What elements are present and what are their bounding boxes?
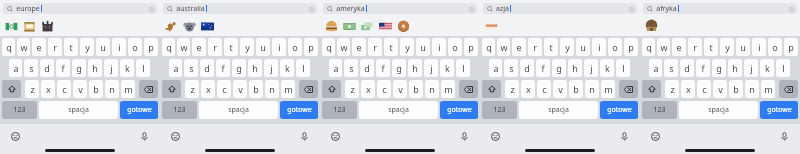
button[interactable]: v <box>713 80 727 98</box>
button[interactable]: a <box>9 59 22 77</box>
button[interactable]: b <box>409 80 423 98</box>
button[interactable]: x <box>41 80 55 98</box>
button[interactable]: k <box>120 59 134 77</box>
button[interactable]: h <box>248 59 262 77</box>
button[interactable]: Backspace <box>299 80 318 98</box>
button[interactable]: Dictation <box>297 129 311 143</box>
button[interactable]: Emoji <box>358 17 376 35</box>
button[interactable]: g <box>232 59 246 77</box>
button[interactable]: l <box>136 59 150 77</box>
button[interactable]: r <box>688 38 702 56</box>
button[interactable]: h <box>408 59 422 77</box>
button[interactable]: j <box>264 59 278 77</box>
button[interactable]: Emoji keyboard <box>168 129 182 143</box>
button[interactable]: c <box>697 80 711 98</box>
button[interactable]: c <box>537 80 551 98</box>
button[interactable]: u <box>416 38 430 56</box>
button[interactable]: s <box>24 59 38 77</box>
button[interactable]: 123 <box>482 101 517 119</box>
button[interactable]: q <box>642 38 655 56</box>
button[interactable]: spacja <box>39 101 118 119</box>
button[interactable]: o <box>448 38 462 56</box>
button[interactable]: p <box>144 38 158 56</box>
button[interactable]: spacja <box>679 101 758 119</box>
button[interactable]: z <box>25 80 39 98</box>
button[interactable]: Emoji <box>642 17 660 35</box>
button[interactable]: l <box>776 59 790 77</box>
button[interactable]: 123 <box>642 101 677 119</box>
button[interactable]: t <box>544 38 558 56</box>
button[interactable]: r <box>528 38 542 56</box>
button[interactable]: w <box>657 38 670 56</box>
button[interactable]: Emoji <box>394 17 412 35</box>
button[interactable]: gotowe <box>760 101 798 119</box>
button[interactable]: Dictation <box>777 129 791 143</box>
button[interactable]: n <box>265 80 279 98</box>
button[interactable]: a <box>169 59 182 77</box>
button[interactable]: Emoji <box>340 17 358 35</box>
button[interactable]: Backspace <box>139 80 158 98</box>
button[interactable]: o <box>128 38 142 56</box>
button[interactable]: p <box>624 38 638 56</box>
button[interactable]: t <box>704 38 718 56</box>
button[interactable]: ameryka <box>323 3 477 14</box>
button[interactable]: f <box>216 59 230 77</box>
button[interactable]: m <box>601 80 615 98</box>
button[interactable]: q <box>482 38 495 56</box>
button[interactable]: z <box>665 80 679 98</box>
button[interactable]: w <box>177 38 190 56</box>
button[interactable]: d <box>360 59 374 77</box>
button[interactable]: n <box>585 80 599 98</box>
button[interactable]: j <box>104 59 118 77</box>
button[interactable]: e <box>672 38 686 56</box>
button[interactable]: f <box>696 59 710 77</box>
button[interactable]: t <box>64 38 78 56</box>
button[interactable]: b <box>569 80 583 98</box>
button[interactable]: Emoji <box>322 17 340 35</box>
button[interactable]: Emoji <box>38 17 56 35</box>
button[interactable]: Backspace <box>779 80 798 98</box>
button[interactable]: v <box>73 80 87 98</box>
button[interactable]: w <box>17 38 30 56</box>
button[interactable]: gotowe <box>440 101 478 119</box>
button[interactable]: q <box>2 38 15 56</box>
button[interactable]: e <box>192 38 206 56</box>
button[interactable]: y <box>240 38 254 56</box>
button[interactable]: Emoji keyboard <box>648 129 662 143</box>
button[interactable]: afryka <box>643 3 797 14</box>
button[interactable]: i <box>112 38 126 56</box>
button[interactable]: l <box>616 59 630 77</box>
button[interactable]: v <box>233 80 247 98</box>
button[interactable]: b <box>249 80 263 98</box>
button[interactable]: l <box>456 59 470 77</box>
button[interactable]: europe <box>3 3 157 14</box>
button[interactable]: o <box>768 38 782 56</box>
button[interactable]: Shift <box>2 80 21 98</box>
button[interactable]: g <box>712 59 726 77</box>
button[interactable]: j <box>424 59 438 77</box>
button[interactable]: Shift <box>322 80 341 98</box>
button[interactable]: m <box>441 80 455 98</box>
button[interactable]: Clear <box>787 5 795 13</box>
button[interactable]: e <box>32 38 46 56</box>
button[interactable]: Dictation <box>137 129 151 143</box>
button[interactable]: 123 <box>2 101 37 119</box>
button[interactable]: g <box>72 59 86 77</box>
button[interactable]: Emoji <box>376 17 394 35</box>
button[interactable]: k <box>760 59 774 77</box>
button[interactable]: gotowe <box>120 101 158 119</box>
button[interactable]: h <box>568 59 582 77</box>
button[interactable]: Dictation <box>617 129 631 143</box>
button[interactable]: g <box>392 59 406 77</box>
button[interactable]: y <box>80 38 94 56</box>
button[interactable]: Clear <box>627 5 635 13</box>
button[interactable]: u <box>256 38 270 56</box>
button[interactable]: p <box>784 38 798 56</box>
button[interactable]: Emoji keyboard <box>488 129 502 143</box>
button[interactable]: d <box>680 59 694 77</box>
button[interactable]: c <box>377 80 391 98</box>
button[interactable]: Backspace <box>619 80 638 98</box>
button[interactable]: j <box>584 59 598 77</box>
button[interactable]: x <box>681 80 695 98</box>
button[interactable]: j <box>744 59 758 77</box>
